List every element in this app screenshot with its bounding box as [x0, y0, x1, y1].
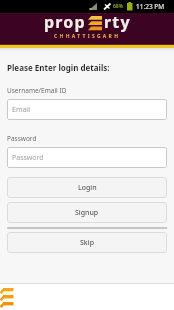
- staticText: prop: [44, 11, 86, 33]
- staticText: Email: [12, 105, 30, 115]
- staticText: CHHATTISGARH: [54, 33, 121, 40]
- button[interactable]: Signup: [7, 202, 167, 223]
- button[interactable]: Password: [7, 147, 167, 168]
- staticText: Password: [12, 153, 44, 163]
- staticText: Signup: [75, 208, 99, 218]
- staticText: Password: [7, 134, 37, 143]
- staticText: 11:23 PM: [136, 2, 165, 11]
- staticText: Skip: [80, 238, 94, 248]
- staticText: Please Enter login details:: [7, 62, 110, 73]
- button[interactable]: Login: [7, 177, 167, 198]
- button[interactable]: Skip: [7, 232, 167, 253]
- button[interactable]: Email: [7, 99, 167, 120]
- staticText: 68%: [113, 3, 123, 10]
- staticText: Username/Email ID: [7, 86, 67, 95]
- staticText: Login: [78, 183, 97, 193]
- staticText: rty: [104, 11, 131, 33]
